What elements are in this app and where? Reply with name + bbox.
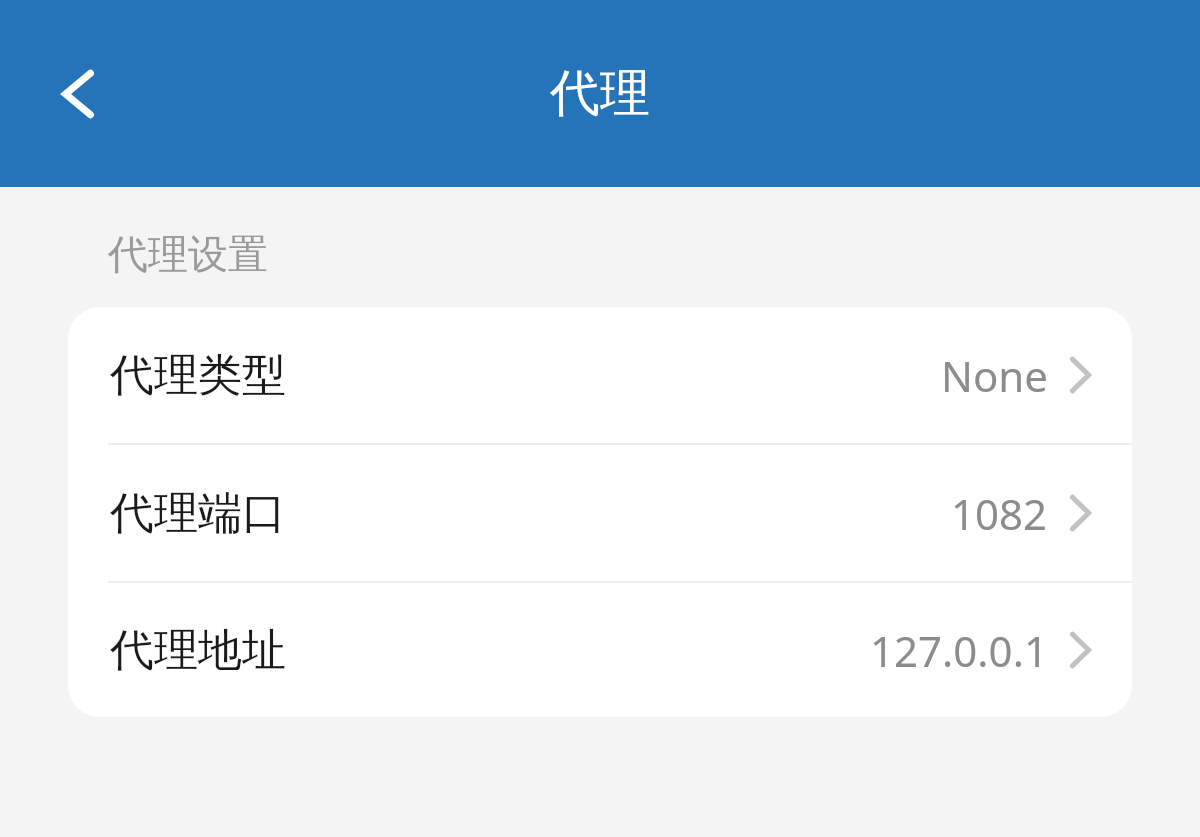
- staticText: 代理端口: [110, 486, 286, 541]
- staticText: 代理地址: [110, 623, 286, 678]
- button[interactable]: 代理类型: [68, 307, 1132, 443]
- button[interactable]: Back: [30, 46, 126, 142]
- button[interactable]: 代理端口: [68, 445, 1132, 581]
- staticText: 代理: [550, 62, 650, 125]
- staticText: None: [941, 347, 1048, 404]
- staticText: 127.0.0.1: [870, 622, 1048, 679]
- staticText: 代理类型: [110, 348, 286, 403]
- staticText: 代理设置: [108, 229, 268, 279]
- button[interactable]: 代理地址: [68, 583, 1132, 717]
- staticText: 1082: [951, 485, 1048, 542]
